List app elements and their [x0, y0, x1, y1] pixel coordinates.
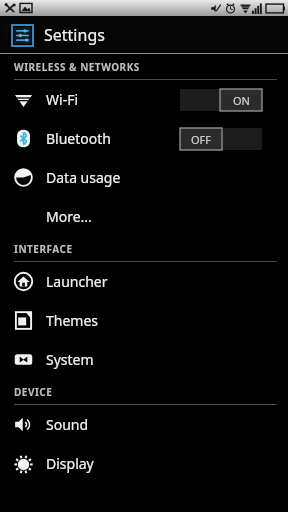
staticText: Bluetooth [46, 129, 111, 148]
staticText: DEVICE [14, 385, 53, 399]
button[interactable]: Launcher [0, 262, 288, 301]
button[interactable]: Display [0, 444, 288, 483]
staticText: Wi-Fi [46, 90, 79, 109]
staticText: Settings [44, 24, 105, 46]
staticText: Launcher [46, 272, 108, 291]
staticText: Data usage [46, 168, 121, 187]
button[interactable]: Themes [0, 301, 288, 340]
staticText: ON [233, 93, 250, 108]
button[interactable]: Data usage [0, 158, 288, 197]
staticText: OFF [191, 132, 212, 147]
staticText: Sound [46, 415, 89, 434]
staticText: Display [46, 454, 94, 473]
staticText: WIRELESS & NETWORKS [14, 60, 140, 74]
staticText: Themes [46, 311, 99, 330]
button[interactable]: System [0, 340, 288, 379]
button[interactable]: Switch on [180, 89, 262, 111]
staticText: System [46, 350, 94, 369]
button[interactable]: More [0, 197, 288, 236]
staticText: INTERFACE [14, 242, 73, 256]
staticText: More... [46, 207, 92, 226]
button[interactable]: Switch off [180, 128, 262, 150]
button[interactable]: Bluetooth [0, 119, 288, 158]
button[interactable]: Wi-Fi [0, 80, 288, 119]
button[interactable]: Sound [0, 405, 288, 444]
